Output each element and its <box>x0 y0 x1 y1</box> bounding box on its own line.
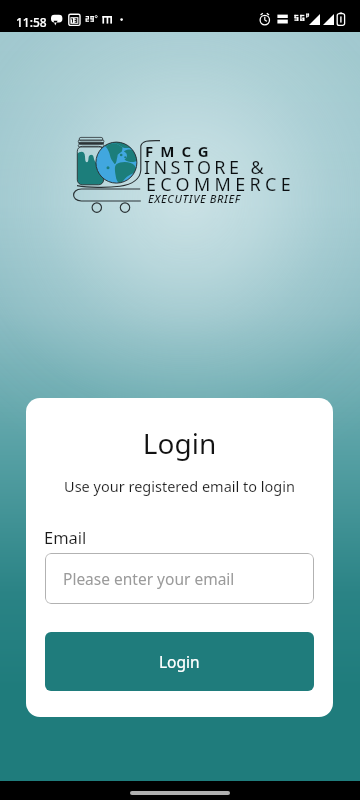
staticText: 11:58 <box>16 14 47 30</box>
staticText: INSTORE & <box>144 155 268 180</box>
staticText: FMCG <box>145 141 216 161</box>
staticText: Login <box>159 651 200 672</box>
button[interactable]: Login <box>45 632 314 691</box>
button[interactable]: Please enter your email <box>45 553 314 604</box>
staticText: EXECUTIVE BRIEF <box>148 191 241 206</box>
staticText: Login <box>26 424 333 462</box>
staticText: Please enter your email <box>63 568 235 589</box>
staticText: Use your registered email to login <box>26 476 333 496</box>
staticText: Email <box>44 526 87 548</box>
staticText: ECOMMERCE <box>146 172 296 197</box>
